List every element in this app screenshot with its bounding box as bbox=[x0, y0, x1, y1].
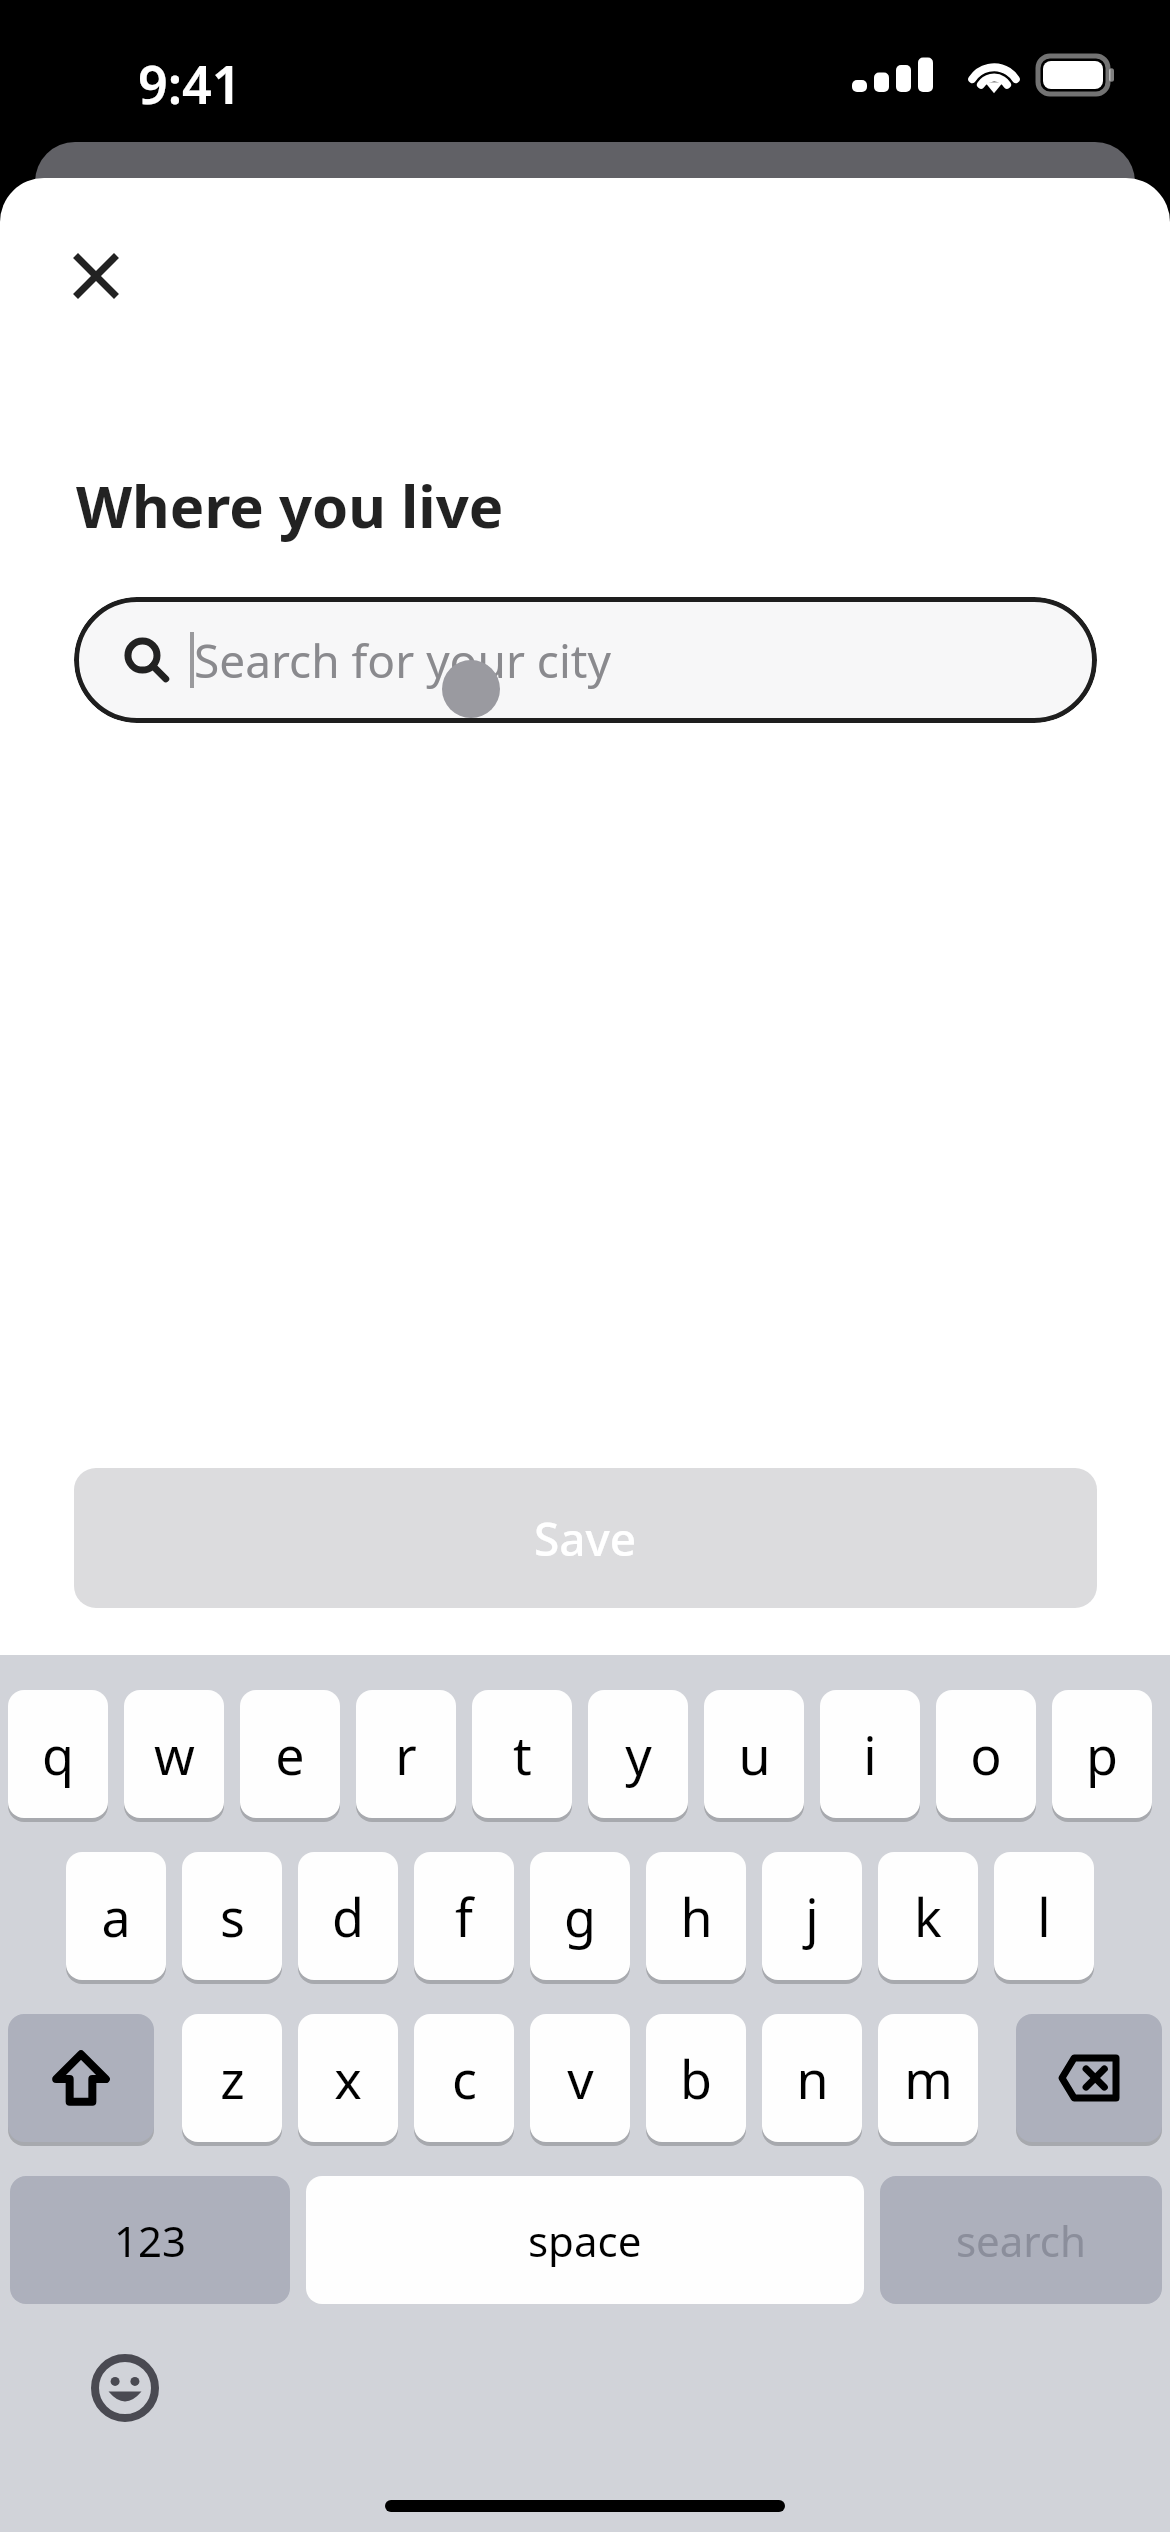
button[interactable]: o bbox=[936, 1690, 1036, 1818]
staticText: f bbox=[455, 1881, 473, 1952]
staticText: e bbox=[275, 1719, 305, 1790]
staticText: g bbox=[564, 1881, 596, 1952]
button[interactable]: 123 bbox=[10, 2176, 290, 2304]
staticText: w bbox=[154, 1719, 195, 1790]
staticText: k bbox=[914, 1881, 942, 1952]
staticText: r bbox=[395, 1719, 417, 1790]
staticText: p bbox=[1086, 1719, 1118, 1790]
staticText: c bbox=[452, 2043, 477, 2114]
button[interactable]: g bbox=[530, 1852, 630, 1980]
staticText: search bbox=[956, 2212, 1086, 2269]
button[interactable]: r bbox=[356, 1690, 456, 1818]
staticText: a bbox=[101, 1881, 131, 1952]
button[interactable]: q bbox=[8, 1690, 108, 1818]
button[interactable]: b bbox=[646, 2014, 746, 2142]
staticText: n bbox=[796, 2043, 829, 2114]
staticText: space bbox=[528, 2212, 642, 2269]
button[interactable]: search bbox=[880, 2176, 1162, 2304]
button[interactable]: c bbox=[414, 2014, 514, 2142]
button[interactable]: v bbox=[530, 2014, 630, 2142]
staticText: 9:41 bbox=[138, 48, 242, 119]
staticText: j bbox=[805, 1881, 819, 1952]
button[interactable]: z bbox=[182, 2014, 282, 2142]
staticText: Save bbox=[534, 1507, 637, 1570]
button[interactable]: space bbox=[306, 2176, 864, 2304]
staticText: u bbox=[738, 1719, 771, 1790]
button[interactable]: k bbox=[878, 1852, 978, 1980]
button[interactable]: w bbox=[124, 1690, 224, 1818]
staticText: b bbox=[680, 2043, 712, 2114]
button[interactable]: Shift bbox=[8, 2014, 154, 2142]
staticText: x bbox=[334, 2043, 362, 2114]
button[interactable]: s bbox=[182, 1852, 282, 1980]
staticText: t bbox=[513, 1719, 532, 1790]
button[interactable]: e bbox=[240, 1690, 340, 1818]
button[interactable]: Close bbox=[56, 236, 136, 316]
staticText: Search for your city bbox=[194, 629, 611, 692]
button[interactable]: Backspace bbox=[1016, 2014, 1162, 2142]
button[interactable]: Search for your city bbox=[74, 597, 1097, 723]
button[interactable]: Emoji bbox=[80, 2343, 170, 2433]
staticText: y bbox=[625, 1719, 652, 1790]
staticText: o bbox=[970, 1719, 1002, 1790]
button[interactable]: f bbox=[414, 1852, 514, 1980]
button[interactable]: Save bbox=[74, 1468, 1097, 1608]
staticText: 123 bbox=[114, 2212, 187, 2269]
button[interactable]: x bbox=[298, 2014, 398, 2142]
button[interactable]: j bbox=[762, 1852, 862, 1980]
staticText: z bbox=[220, 2043, 245, 2114]
staticText: v bbox=[567, 2043, 594, 2114]
button[interactable]: h bbox=[646, 1852, 746, 1980]
button[interactable]: u bbox=[704, 1690, 804, 1818]
button[interactable]: n bbox=[762, 2014, 862, 2142]
staticText: h bbox=[680, 1881, 713, 1952]
button[interactable]: m bbox=[878, 2014, 978, 2142]
staticText: l bbox=[1037, 1881, 1051, 1952]
staticText: d bbox=[332, 1881, 364, 1952]
staticText: q bbox=[42, 1719, 74, 1790]
button[interactable]: p bbox=[1052, 1690, 1152, 1818]
button[interactable]: y bbox=[588, 1690, 688, 1818]
staticText: m bbox=[904, 2043, 953, 2114]
button[interactable]: i bbox=[820, 1690, 920, 1818]
button[interactable]: a bbox=[66, 1852, 166, 1980]
staticText: i bbox=[863, 1719, 877, 1790]
button[interactable]: t bbox=[472, 1690, 572, 1818]
button[interactable]: l bbox=[994, 1852, 1094, 1980]
staticText: s bbox=[220, 1881, 245, 1952]
staticText: Where you live bbox=[76, 466, 504, 545]
button[interactable]: d bbox=[298, 1852, 398, 1980]
